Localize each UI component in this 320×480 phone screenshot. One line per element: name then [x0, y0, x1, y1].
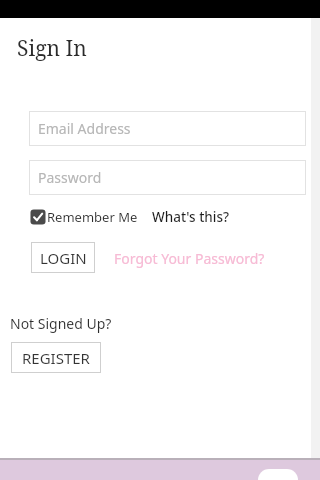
- button[interactable]: Forgot Your Password?: [114, 247, 265, 269]
- staticText: Password: [38, 168, 102, 187]
- button[interactable]: Remember Me: [30, 207, 138, 227]
- staticText: Email Address: [38, 119, 131, 138]
- button[interactable]: REGISTER: [11, 342, 101, 373]
- staticText: REGISTER: [22, 348, 90, 368]
- staticText: Remember Me: [47, 208, 138, 226]
- staticText: Sign In: [17, 34, 87, 63]
- staticText: What's this?: [152, 208, 230, 226]
- button[interactable]: Help: [258, 469, 298, 480]
- button[interactable]: Password: [29, 160, 306, 195]
- staticText: Not Signed Up?: [10, 314, 112, 333]
- button[interactable]: What's this?: [152, 207, 230, 227]
- staticText: LOGIN: [40, 248, 87, 268]
- staticText: Forgot Your Password?: [114, 249, 265, 268]
- button[interactable]: Email Address: [29, 111, 306, 146]
- button[interactable]: LOGIN: [31, 242, 95, 273]
